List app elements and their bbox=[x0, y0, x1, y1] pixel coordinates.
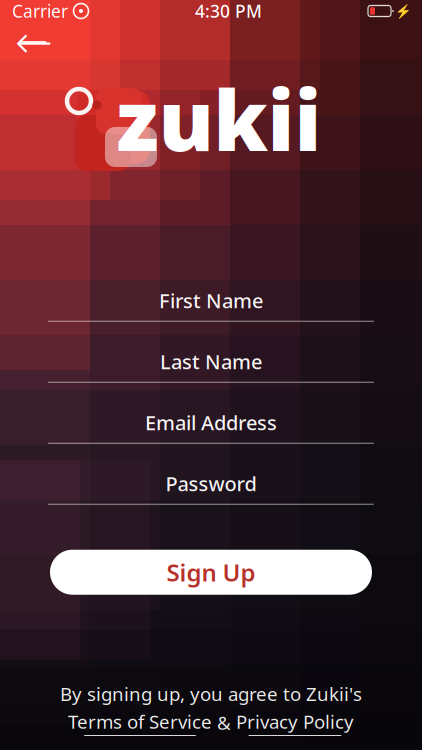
button[interactable]: Privacy Policy bbox=[236, 709, 354, 736]
button[interactable]: Sign Up bbox=[50, 550, 372, 595]
button[interactable]: Terms of Service bbox=[68, 709, 212, 736]
staticText: Password bbox=[165, 470, 256, 497]
staticText: 4:30 PM bbox=[195, 0, 262, 22]
button[interactable]: Password bbox=[48, 444, 374, 505]
staticText: ⚡ bbox=[395, 3, 412, 19]
staticText: ← bbox=[15, 16, 53, 68]
staticText: Terms of Service bbox=[68, 709, 212, 734]
button[interactable]: Last Name bbox=[48, 322, 374, 383]
staticText: Privacy Policy bbox=[236, 709, 354, 734]
staticText: & bbox=[217, 710, 231, 735]
staticText: z bbox=[116, 64, 158, 174]
staticText: By signing up, you agree to Zukii's bbox=[60, 681, 362, 706]
button[interactable]: Email Address bbox=[48, 383, 374, 444]
staticText: First Name bbox=[159, 287, 263, 314]
staticText: ukii bbox=[158, 64, 321, 174]
staticText: Carrier bbox=[12, 0, 68, 22]
staticText: Last Name bbox=[160, 348, 262, 375]
button[interactable]: First Name bbox=[48, 261, 374, 322]
staticText: Sign Up bbox=[166, 556, 255, 588]
staticText: Email Address bbox=[145, 409, 277, 436]
button[interactable]: Back bbox=[12, 22, 56, 62]
